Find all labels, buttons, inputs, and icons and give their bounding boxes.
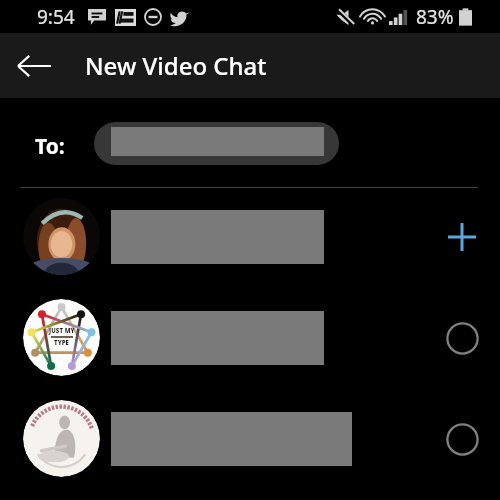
button[interactable]: Selected — [440, 215, 484, 259]
button[interactable]: Select — [440, 417, 484, 461]
staticText: JUST MY — [49, 327, 75, 335]
staticText: 9:54 — [37, 4, 75, 30]
button[interactable]: Back — [8, 40, 60, 92]
button[interactable]: Select — [0, 388, 500, 489]
staticText: 83% — [416, 4, 454, 30]
staticText: To: — [35, 132, 65, 161]
button[interactable]: Selected — [0, 186, 500, 287]
button[interactable]: JUST MY — [0, 287, 500, 388]
staticText: TYPE — [54, 339, 70, 347]
button[interactable]: Select — [440, 316, 484, 360]
staticText: New Video Chat — [85, 49, 267, 82]
button[interactable] — [94, 122, 339, 165]
